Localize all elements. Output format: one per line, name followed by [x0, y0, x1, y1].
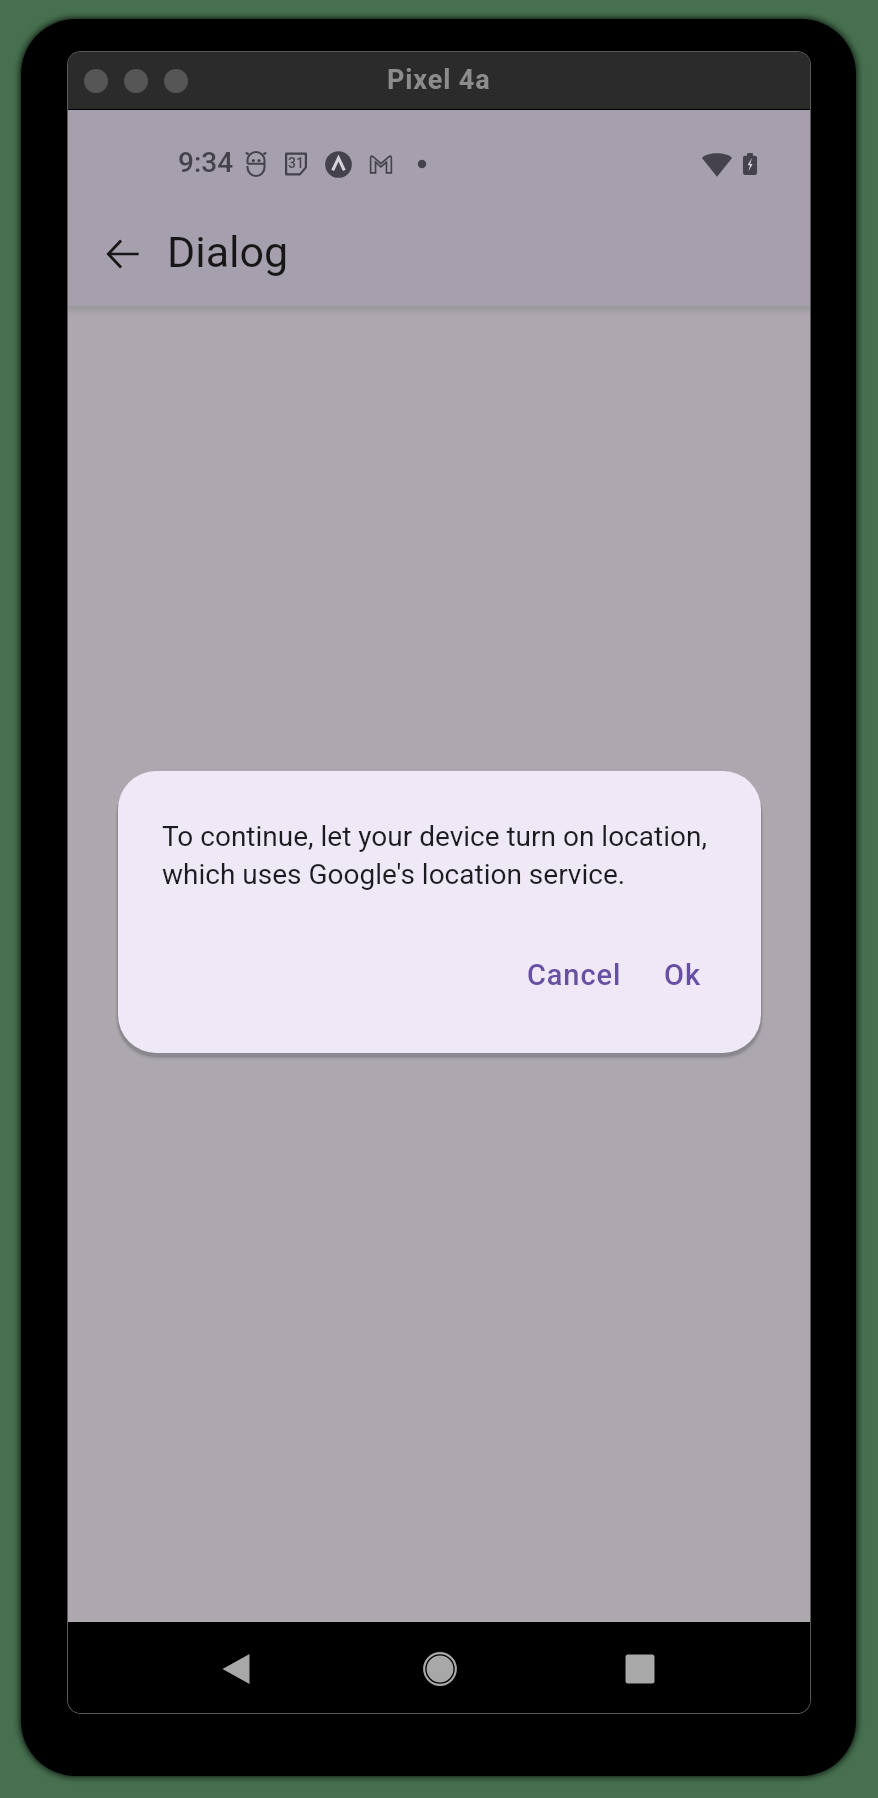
staticText: Cancel: [527, 958, 622, 992]
button[interactable]: Window button: [124, 69, 148, 93]
button[interactable]: Ok: [650, 950, 715, 1000]
button[interactable]: Window button: [84, 69, 108, 93]
button[interactable]: Window button: [164, 69, 188, 93]
button[interactable]: Cancel: [513, 950, 636, 1000]
button[interactable]: Back: [208, 1641, 264, 1697]
staticText: Dialog: [167, 227, 289, 277]
staticText: To continue, let your device turn on loc…: [162, 820, 734, 891]
staticText: Pixel 4a: [387, 64, 491, 96]
button[interactable]: Navigate up: [94, 225, 152, 283]
button[interactable]: Recent apps: [612, 1641, 668, 1697]
staticText: 31: [288, 155, 304, 171]
staticText: Ok: [664, 958, 701, 992]
staticText: 9:34: [178, 146, 234, 179]
button[interactable]: Home: [412, 1641, 468, 1697]
